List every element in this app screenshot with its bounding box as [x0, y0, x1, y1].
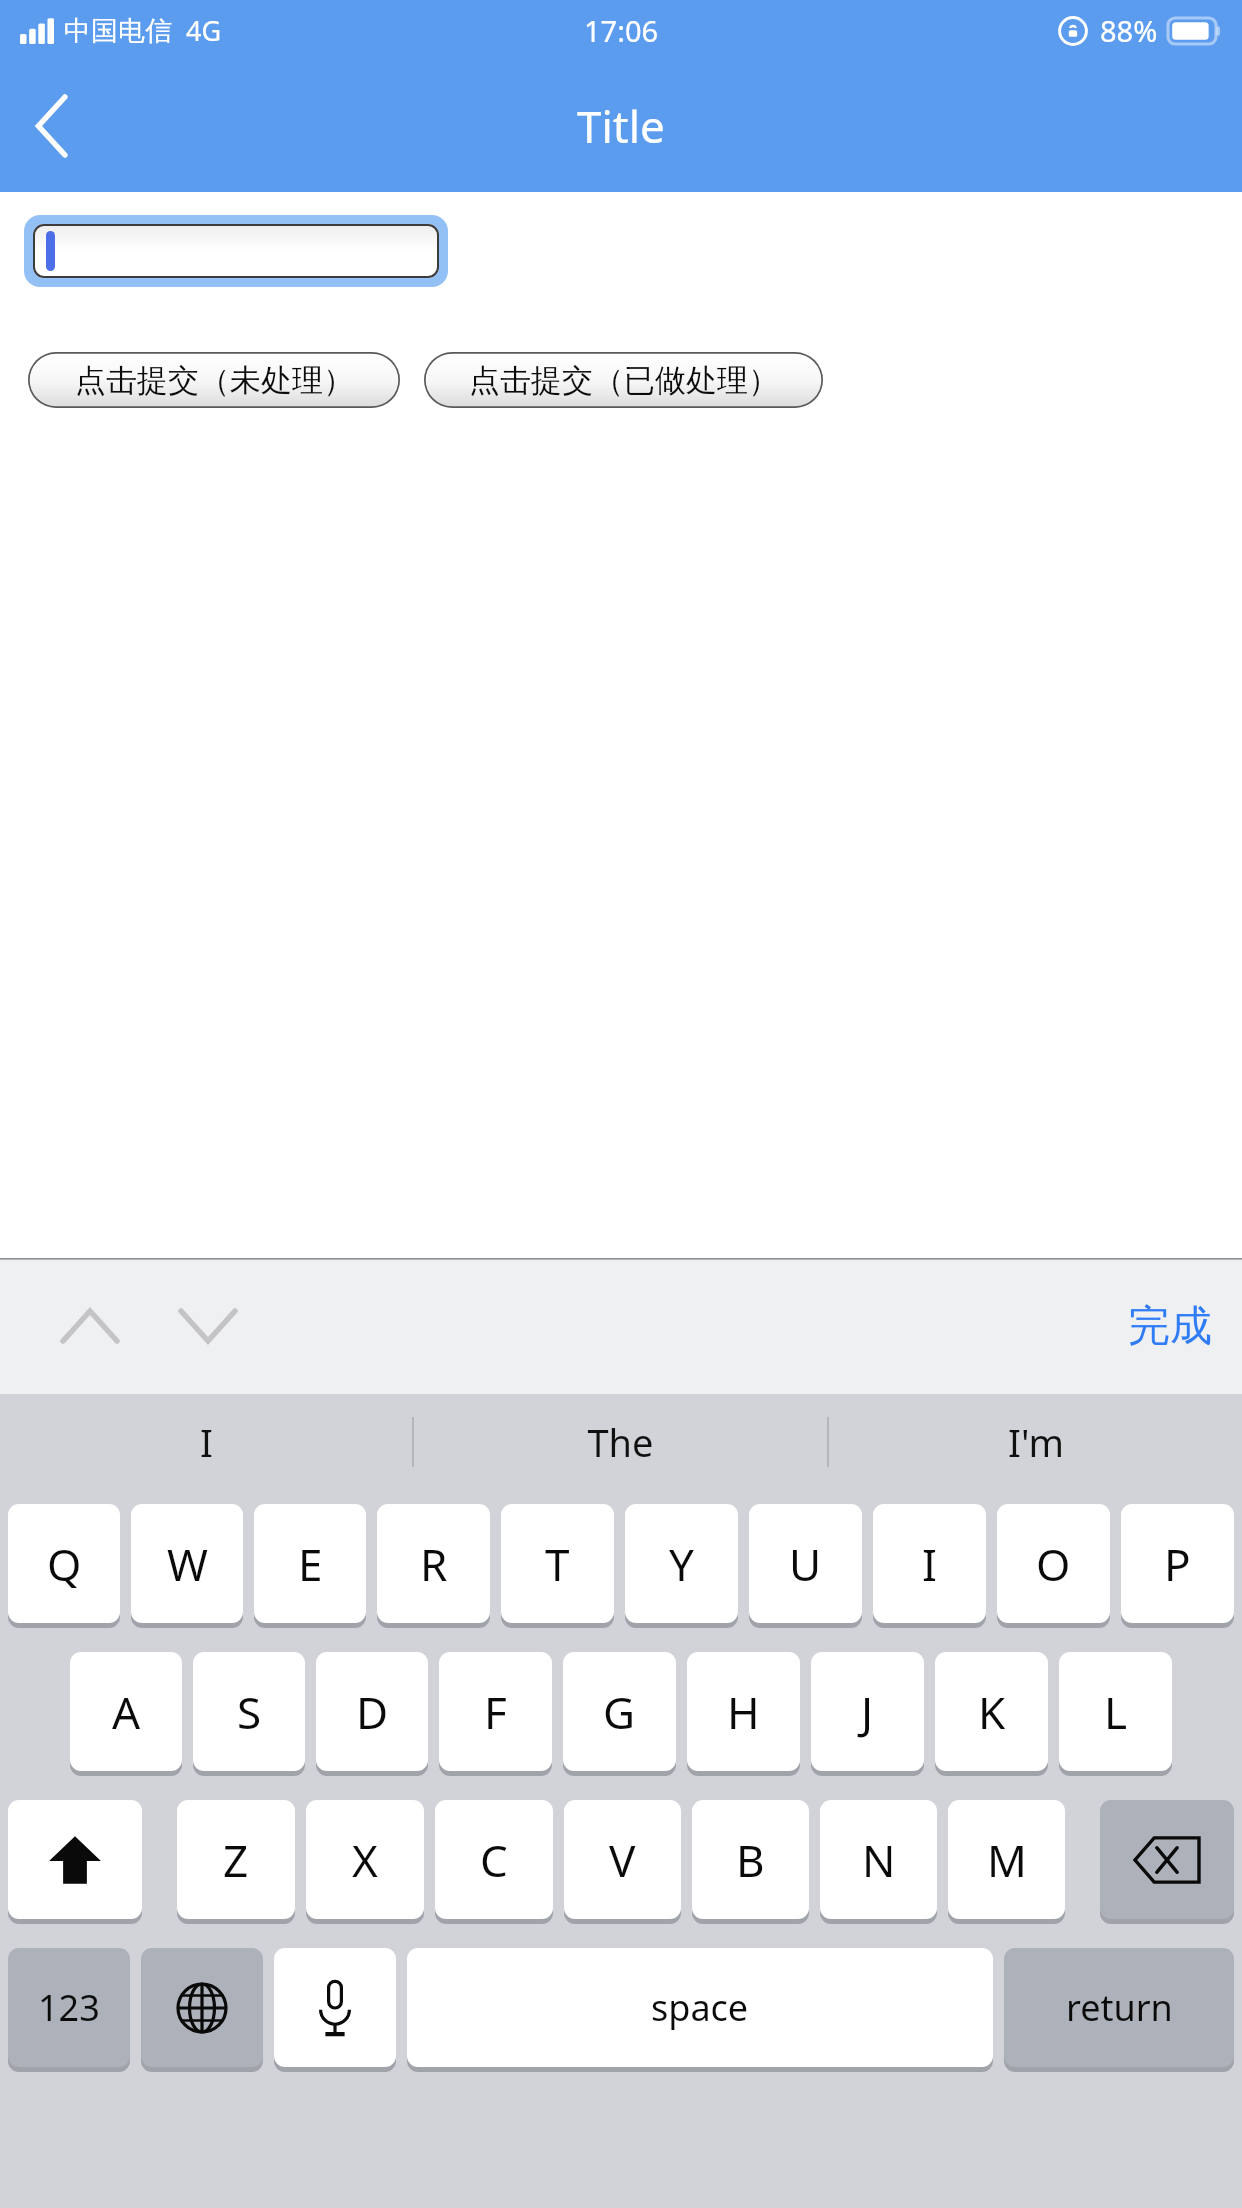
staticText: K — [978, 1682, 1006, 1742]
button[interactable]: A — [70, 1652, 182, 1771]
staticText: O — [1036, 1534, 1071, 1594]
button[interactable]: I — [873, 1504, 986, 1623]
button[interactable]: Delete — [1100, 1800, 1234, 1919]
staticText: U — [789, 1534, 822, 1594]
staticText: I — [200, 1416, 213, 1468]
staticText: V — [609, 1830, 636, 1890]
staticText: return — [1066, 1983, 1173, 2032]
staticText: N — [862, 1830, 896, 1890]
button[interactable]: C — [435, 1800, 553, 1919]
staticText: W — [167, 1534, 208, 1594]
staticText: space — [651, 1983, 749, 2032]
staticText: 点击提交（未处理） — [75, 361, 354, 400]
button[interactable]: Shift — [8, 1800, 142, 1919]
staticText: 17:06 — [584, 11, 659, 50]
button[interactable]: M — [948, 1800, 1065, 1919]
button[interactable]: space — [407, 1948, 993, 2067]
staticText: T — [545, 1534, 570, 1594]
button[interactable]: O — [997, 1504, 1110, 1623]
staticText: 4G — [186, 12, 222, 49]
staticText: Q — [47, 1534, 82, 1594]
button[interactable]: S — [193, 1652, 305, 1771]
staticText: S — [237, 1682, 262, 1742]
button[interactable]: Dictation — [274, 1948, 396, 2067]
staticText: A — [112, 1682, 141, 1742]
staticText: Y — [669, 1534, 694, 1594]
staticText: P — [1164, 1534, 1191, 1594]
button[interactable]: U — [749, 1504, 862, 1623]
button[interactable]: P — [1121, 1504, 1234, 1623]
button[interactable]: X — [306, 1800, 424, 1919]
staticText: I — [922, 1534, 937, 1594]
staticText: H — [727, 1682, 760, 1742]
button[interactable]: F — [439, 1652, 552, 1771]
button[interactable]: D — [316, 1652, 428, 1771]
staticText: 完成 — [1128, 1300, 1212, 1353]
button[interactable]: The — [414, 1394, 827, 1490]
staticText: B — [736, 1830, 765, 1890]
button[interactable]: L — [1059, 1652, 1172, 1771]
button[interactable]: G — [563, 1652, 676, 1771]
staticText: Z — [223, 1830, 249, 1890]
button[interactable]: 点击提交（未处理） — [28, 352, 400, 408]
button[interactable]: J — [811, 1652, 924, 1771]
staticText: 88% — [1100, 11, 1158, 50]
button[interactable]: W — [131, 1504, 243, 1623]
staticText: X — [352, 1830, 378, 1890]
button[interactable]: I'm — [829, 1394, 1242, 1490]
staticText: C — [480, 1830, 508, 1890]
button[interactable]: 点击提交（已做处理） — [424, 352, 823, 408]
staticText: J — [861, 1682, 874, 1742]
staticText: L — [1104, 1682, 1128, 1742]
staticText: D — [356, 1682, 389, 1742]
button[interactable]: N — [820, 1800, 937, 1919]
button[interactable]: Y — [625, 1504, 738, 1623]
button[interactable]: 完成 — [1128, 1278, 1212, 1374]
button[interactable]: V — [564, 1800, 681, 1919]
staticText: 中国电信 — [64, 14, 172, 48]
button[interactable]: Change keyboard — [141, 1948, 263, 2067]
staticText: 点击提交（已做处理） — [469, 361, 779, 400]
button[interactable] — [24, 215, 448, 287]
button[interactable]: Z — [177, 1800, 295, 1919]
staticText: I'm — [1008, 1416, 1064, 1468]
button[interactable]: H — [687, 1652, 800, 1771]
staticText: E — [298, 1534, 323, 1594]
staticText: R — [420, 1534, 448, 1594]
button[interactable]: I — [0, 1394, 412, 1490]
staticText: M — [987, 1830, 1027, 1890]
button[interactable]: E — [254, 1504, 366, 1623]
button[interactable]: return — [1004, 1948, 1234, 2067]
button[interactable]: K — [935, 1652, 1048, 1771]
staticText: The — [587, 1416, 654, 1468]
staticText: G — [603, 1682, 636, 1742]
staticText: 123 — [38, 1983, 100, 2032]
button[interactable]: Q — [8, 1504, 120, 1623]
button[interactable]: R — [377, 1504, 490, 1623]
button[interactable]: T — [501, 1504, 614, 1623]
button[interactable]: 123 — [8, 1948, 130, 2067]
button[interactable]: Previous field — [48, 1281, 132, 1371]
staticText: F — [484, 1682, 507, 1742]
button[interactable]: Back — [14, 84, 90, 168]
button[interactable]: Next field — [166, 1281, 250, 1371]
staticText: Title — [577, 96, 665, 156]
button[interactable]: B — [692, 1800, 809, 1919]
